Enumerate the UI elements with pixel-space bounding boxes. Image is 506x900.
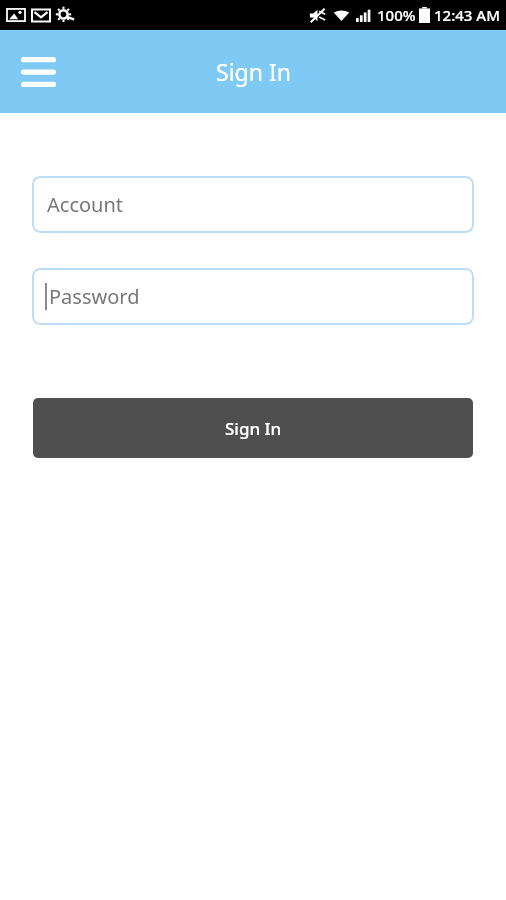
staticText: 100% xyxy=(377,5,416,25)
button[interactable]: Account xyxy=(32,176,474,233)
staticText: Sign In xyxy=(225,417,282,440)
staticText: Account xyxy=(47,191,124,218)
button[interactable]: Open navigation menu xyxy=(12,46,64,98)
staticText: Sign In xyxy=(216,56,291,87)
staticText: Password xyxy=(49,283,140,310)
staticText: 12:43 AM xyxy=(434,5,500,25)
button[interactable]: Password xyxy=(32,268,474,325)
button[interactable]: Sign In xyxy=(33,398,473,458)
